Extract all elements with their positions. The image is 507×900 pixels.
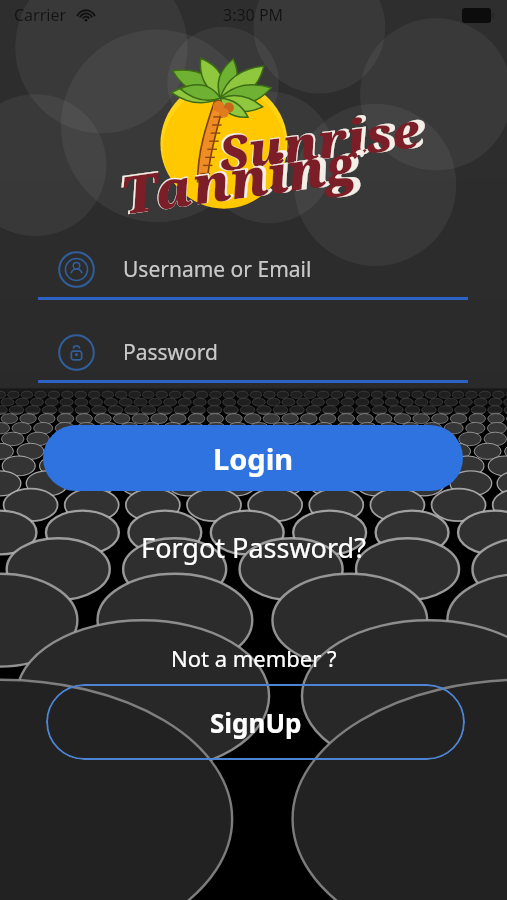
staticText: Tanning (114, 123, 368, 231)
button[interactable]: Username (38, 238, 468, 300)
staticText: Username or Email (123, 255, 312, 284)
staticText: Not a member ? (171, 643, 337, 673)
button[interactable]: Login (43, 425, 463, 491)
staticText: Login (213, 439, 294, 478)
button[interactable]: SignUp (46, 684, 465, 760)
button[interactable]: Forgot Password? (0, 523, 507, 571)
staticText: Sunrise (215, 96, 423, 185)
staticText: 3:30 PM (223, 4, 284, 26)
other: Username (58, 251, 95, 288)
staticText: Password (123, 338, 218, 367)
staticText: Carrier (14, 4, 67, 26)
staticText: Sunrise (213, 93, 429, 187)
staticText: Tanning (116, 126, 361, 229)
staticText: SignUp (210, 705, 302, 740)
button[interactable]: Password (38, 321, 468, 383)
other: Password (58, 334, 95, 371)
staticText: Forgot Password? (141, 529, 366, 566)
